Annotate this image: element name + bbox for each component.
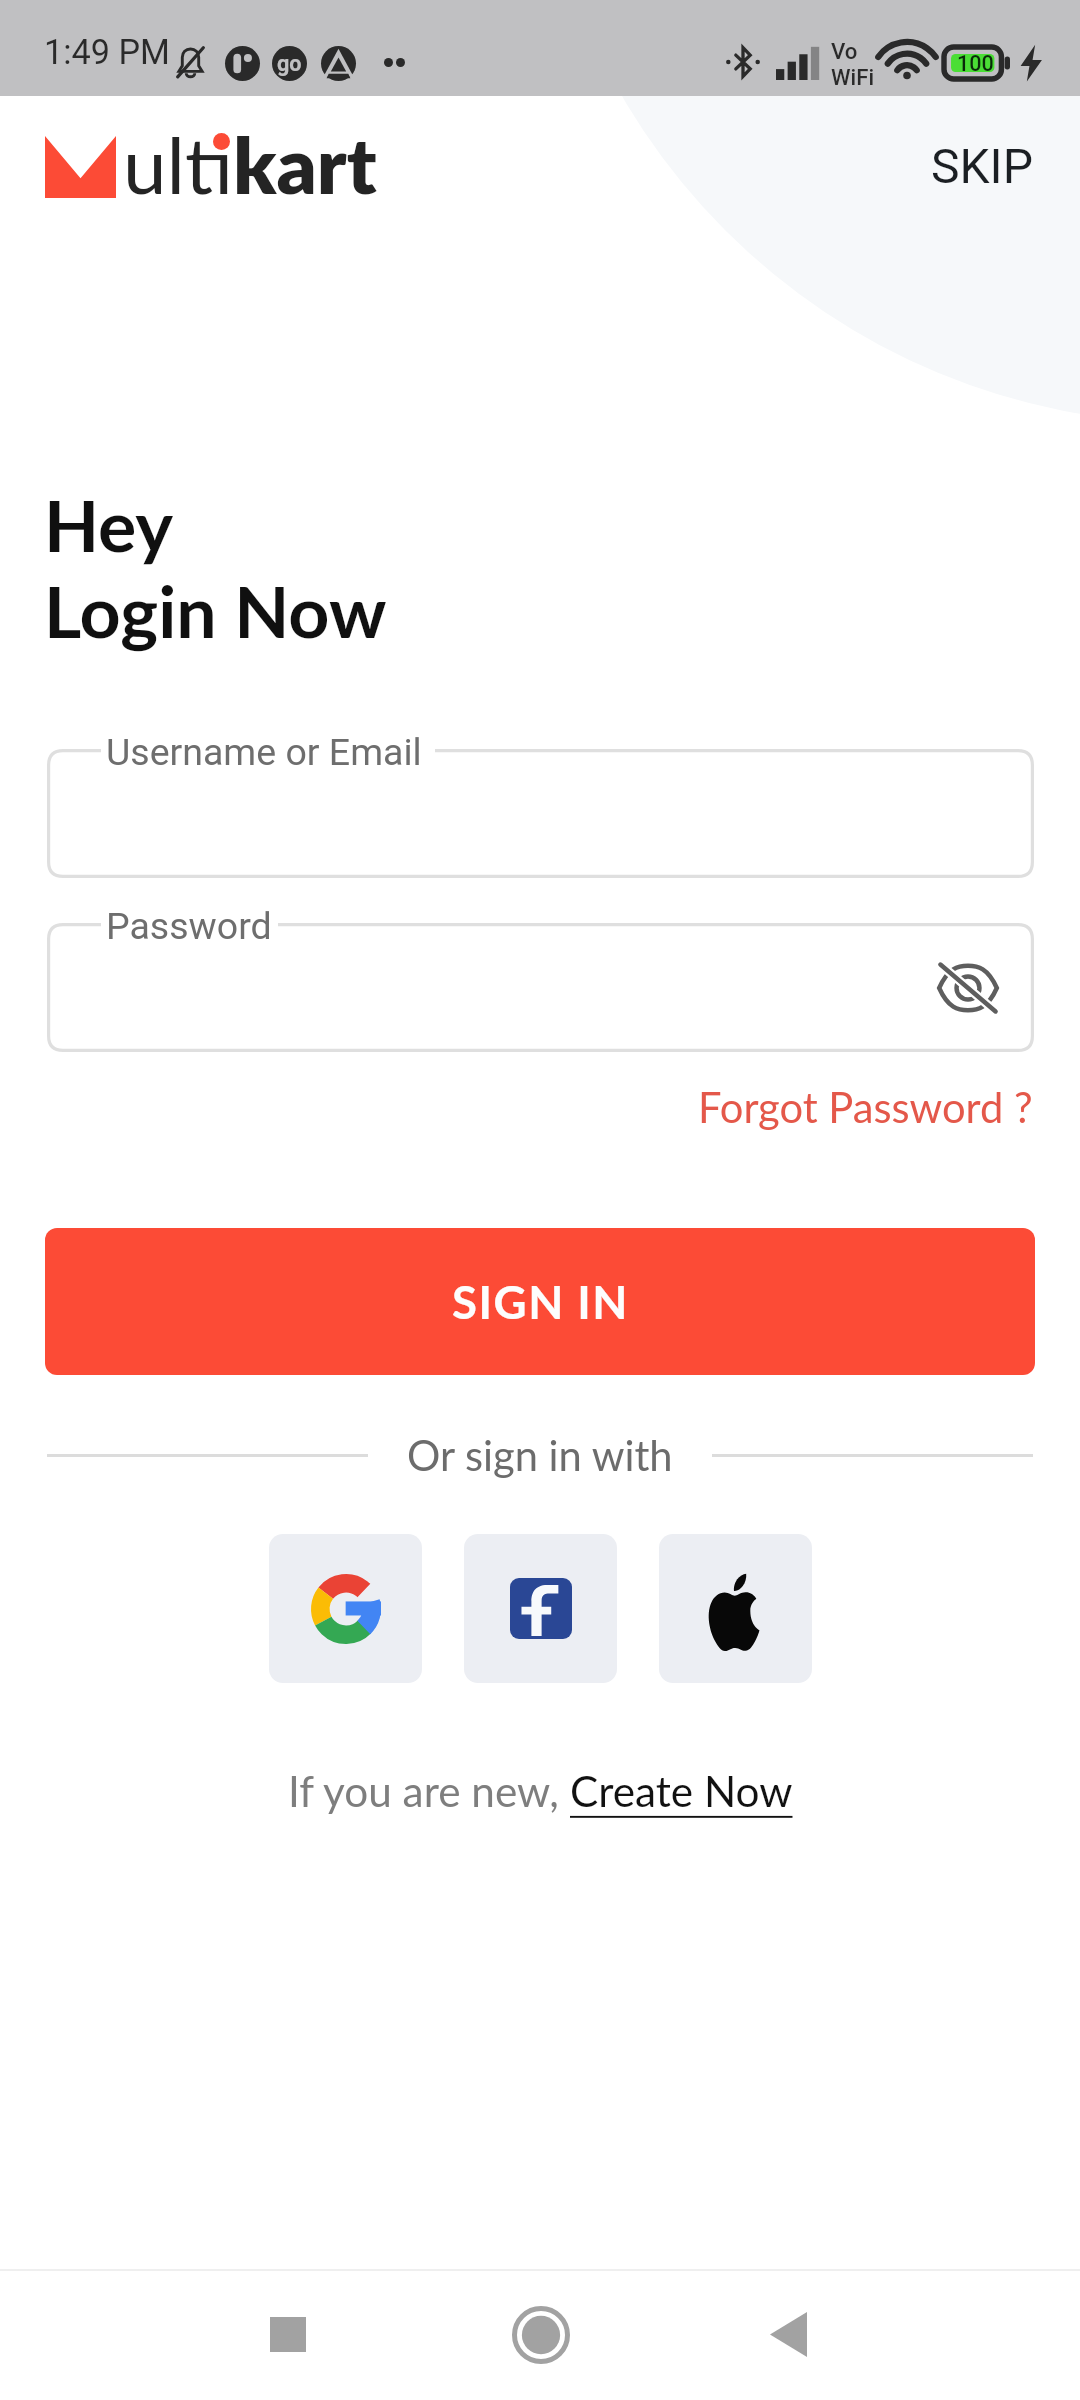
button[interactable]: Home (451, 2281, 631, 2388)
button[interactable]: Show password (47, 923, 1034, 1052)
button[interactable]: Sign in with Google (269, 1534, 422, 1683)
staticText: Login Now (44, 567, 387, 653)
staticText: SKIP (931, 138, 1033, 194)
button[interactable]: Create Now (570, 1765, 793, 1816)
staticText: If you are new, (288, 1765, 570, 1816)
button[interactable]: Show password (923, 943, 1013, 1033)
staticText: go (277, 51, 302, 76)
button[interactable]: Recents (198, 2281, 378, 2388)
button[interactable]: Forgot Password ? (682, 1070, 1049, 1144)
button[interactable]: Sign in with Facebook (464, 1534, 617, 1683)
button[interactable]: Sign in with Apple (659, 1534, 812, 1683)
staticText: Forgot Password ? (698, 1082, 1033, 1132)
button[interactable]: SIGN IN (45, 1228, 1035, 1375)
button[interactable]: SKIP (911, 124, 1053, 208)
staticText: Or sign in with (407, 1430, 673, 1480)
button[interactable]: Back (698, 2281, 878, 2388)
staticText: ultikart (123, 117, 377, 211)
staticText: Vo (831, 38, 858, 64)
staticText: Username or Email (106, 730, 422, 774)
staticText: SIGN IN (452, 1274, 629, 1329)
staticText: Create Now (570, 1765, 793, 1816)
button[interactable] (47, 749, 1034, 878)
staticText: Password (106, 904, 272, 948)
staticText: WiFi (831, 64, 875, 90)
staticText: 100 (957, 51, 994, 76)
staticText: 1:49 PM (44, 32, 170, 72)
staticText: Hey (44, 481, 174, 567)
